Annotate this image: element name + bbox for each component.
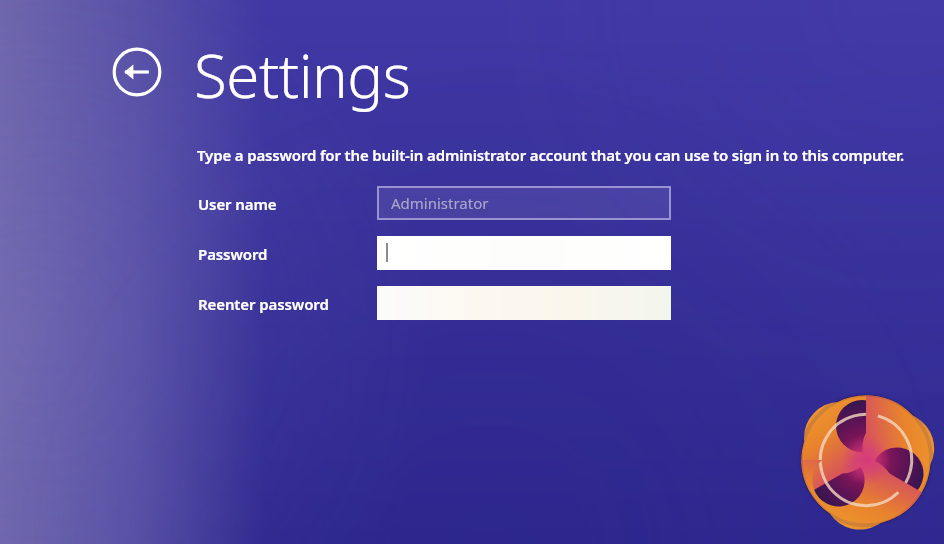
button[interactable]	[377, 236, 671, 270]
button[interactable]: Administrator	[377, 186, 671, 220]
staticText: Settings	[194, 34, 411, 116]
staticText: Administrator	[391, 193, 489, 213]
other: Logo	[798, 392, 934, 528]
staticText: User name	[198, 194, 277, 214]
button[interactable]: Back	[112, 47, 162, 97]
staticText: Password	[198, 244, 268, 264]
staticText: Type a password for the built-in adminis…	[197, 145, 904, 165]
staticText: Reenter password	[198, 294, 329, 314]
button[interactable]	[377, 286, 671, 320]
